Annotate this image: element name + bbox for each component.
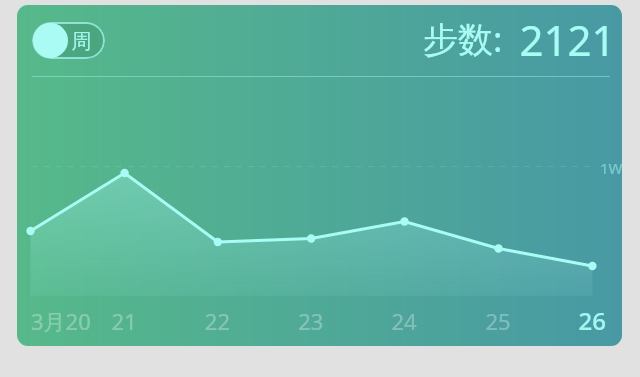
button[interactable]: Switch to weekly view — [32, 22, 105, 59]
